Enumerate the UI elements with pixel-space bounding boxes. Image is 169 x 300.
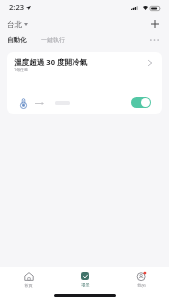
staticText: 我的 bbox=[137, 283, 146, 288]
button[interactable]: 溫度超過 30 度開冷氣 bbox=[7, 52, 162, 114]
staticText: 自動化 bbox=[7, 36, 27, 44]
button[interactable]: 場景 bbox=[57, 267, 113, 300]
button[interactable]: Open automation details bbox=[143, 56, 157, 70]
staticText: 2:23 bbox=[9, 2, 25, 12]
button[interactable]: 一鍵執行 bbox=[41, 33, 65, 46]
staticText: 1個任務 bbox=[14, 67, 28, 72]
button[interactable]: 自動化 bbox=[7, 33, 27, 46]
button[interactable]: More options bbox=[147, 33, 162, 46]
staticText: 溫度超過 30 度開冷氣 bbox=[14, 57, 88, 67]
button[interactable]: Enable automation bbox=[131, 97, 151, 108]
staticText: 一鍵執行 bbox=[41, 36, 65, 44]
staticText: 首頁 bbox=[24, 283, 33, 288]
staticText: 台北 bbox=[7, 20, 22, 29]
button[interactable]: 台北 bbox=[7, 16, 28, 32]
button[interactable]: Add bbox=[147, 16, 162, 32]
button[interactable]: 首頁 bbox=[0, 267, 57, 300]
staticText: 場景 bbox=[81, 282, 90, 287]
button[interactable]: 我的 bbox=[113, 267, 169, 300]
